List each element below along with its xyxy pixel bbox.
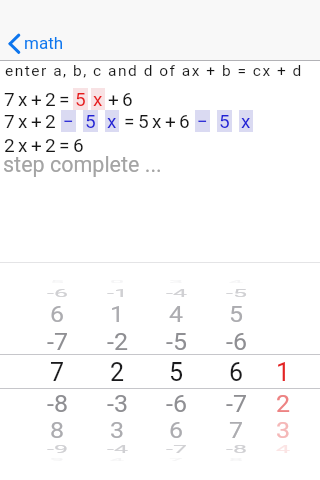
button[interactable] <box>205 263 267 480</box>
staticText: = <box>59 134 70 156</box>
staticText: x <box>152 110 162 132</box>
staticText: x <box>18 110 28 132</box>
staticText: -8 <box>226 443 247 456</box>
staticText: 7 <box>169 457 184 462</box>
staticText: -5 <box>226 287 247 300</box>
staticText: -4 <box>166 287 187 300</box>
staticText: 5 <box>75 88 86 110</box>
staticText: 9 <box>50 457 65 462</box>
staticText: x <box>107 110 117 132</box>
button[interactable] <box>145 263 207 480</box>
staticText: 8 <box>229 457 244 462</box>
staticText: 1 <box>110 302 125 327</box>
staticText: 2 <box>4 134 15 156</box>
staticText: 7 <box>50 358 65 387</box>
staticText: 6 <box>50 302 65 327</box>
staticText: 3 <box>276 418 291 443</box>
staticText: 6 <box>179 110 190 132</box>
staticText: math <box>24 33 64 53</box>
staticText: -3 <box>107 390 128 417</box>
staticText: -2 <box>107 328 128 355</box>
staticText: 2 <box>110 358 125 387</box>
staticText: 2 <box>45 110 56 132</box>
staticText: x <box>18 134 28 156</box>
staticText: -7 <box>166 443 187 456</box>
staticText: 3 <box>169 279 184 284</box>
staticText: 6 <box>169 418 184 443</box>
staticText: 2 <box>276 390 291 417</box>
staticText: 5 <box>138 110 149 132</box>
staticText: 2 <box>45 88 56 110</box>
staticText: + <box>165 110 176 132</box>
staticText: 4 <box>110 457 125 462</box>
button[interactable] <box>26 263 88 480</box>
staticText: 5 <box>219 110 230 132</box>
staticText: x <box>93 88 103 110</box>
staticText: x <box>241 110 251 132</box>
staticText: 6 <box>73 134 84 156</box>
staticText: 5 <box>85 110 96 132</box>
staticText: -9 <box>47 443 68 456</box>
staticText: − <box>197 110 208 132</box>
staticText: -1 <box>107 287 128 300</box>
button[interactable]: math <box>0 26 78 58</box>
staticText: x <box>18 88 28 110</box>
button[interactable] <box>86 263 148 480</box>
staticText: 5 <box>169 358 184 387</box>
staticText: -6 <box>166 390 187 417</box>
staticText: -5 <box>166 328 187 355</box>
staticText: + <box>31 134 42 156</box>
staticText: 5 <box>229 302 244 327</box>
staticText: = <box>124 110 135 132</box>
staticText: 6 <box>122 88 133 110</box>
staticText: 4 <box>229 279 244 284</box>
staticText: 1 <box>276 358 291 387</box>
staticText: enter a, b, c and d of ax + b = cx + d <box>5 62 303 80</box>
staticText: 7 <box>4 110 15 132</box>
staticText: 7 <box>4 88 15 110</box>
button[interactable] <box>252 263 314 480</box>
staticText: + <box>31 110 42 132</box>
staticText: + <box>108 88 119 110</box>
staticText: + <box>31 88 42 110</box>
staticText: -6 <box>226 328 247 355</box>
staticText: 6 <box>229 358 244 387</box>
staticText: 2 <box>45 134 56 156</box>
staticText: step complete ... <box>3 152 162 177</box>
staticText: 7 <box>229 418 244 443</box>
staticText: 3 <box>110 418 125 443</box>
staticText: 5 <box>50 279 65 284</box>
staticText: 0 <box>110 279 125 284</box>
staticText: 4 <box>169 302 184 327</box>
staticText: − <box>63 110 74 132</box>
staticText: -8 <box>47 390 68 417</box>
staticText: 4 <box>276 443 291 456</box>
staticText: = <box>59 88 70 110</box>
staticText: -6 <box>47 287 68 300</box>
staticText: -7 <box>226 390 247 417</box>
staticText: 8 <box>50 418 65 443</box>
staticText: -4 <box>107 443 128 456</box>
staticText: -7 <box>47 328 68 355</box>
